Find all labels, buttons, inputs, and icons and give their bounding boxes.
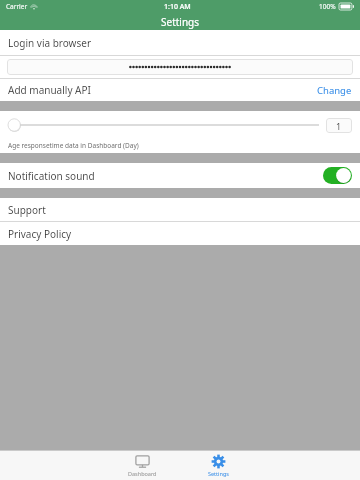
staticText: Carrier <box>6 2 28 11</box>
staticText: Settings <box>208 470 229 477</box>
staticText: 1:10 AM <box>164 2 191 12</box>
button[interactable]: Settings <box>191 451 245 480</box>
staticText: 100% <box>319 2 336 11</box>
staticText: Dashboard <box>128 470 157 477</box>
button[interactable]: Notification sound toggle, on <box>323 167 352 184</box>
button[interactable]: Login via browser <box>0 30 360 55</box>
staticText: Privacy Policy <box>8 227 72 241</box>
staticText: Settings <box>161 15 200 29</box>
button[interactable]: Privacy Policy <box>0 222 360 245</box>
button[interactable]: 1 <box>326 118 352 133</box>
staticText: Login via browser <box>8 36 92 50</box>
button[interactable] <box>7 59 353 75</box>
staticText: Support <box>8 203 46 217</box>
staticText: Notification sound <box>8 169 95 183</box>
button[interactable]: Support <box>0 198 360 221</box>
staticText: Add manually API <box>8 83 91 97</box>
staticText: Change <box>317 84 352 97</box>
button[interactable]: Dashboard <box>115 451 169 480</box>
button[interactable] <box>8 114 319 136</box>
staticText: 1 <box>336 120 342 132</box>
button[interactable]: Notification sound <box>0 163 360 188</box>
button[interactable]: Add manually API <box>0 79 360 101</box>
staticText: Age responsetime data in Dashboard (Day) <box>8 141 139 150</box>
